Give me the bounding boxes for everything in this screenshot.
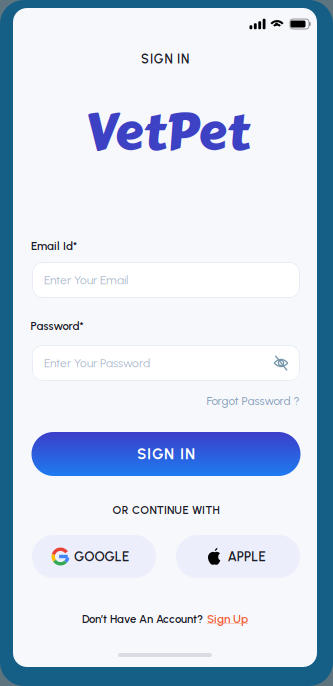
staticText: OR CONTINUE WITH [112,503,219,517]
staticText: Email Id* [31,239,77,253]
staticText: VetPet [85,92,249,172]
staticText: SIGN IN [141,51,189,67]
button[interactable]: APPLE [176,535,300,578]
staticText: Enter Your Password [44,356,150,370]
staticText: SIGN IN [137,445,195,463]
staticText: APPLE [228,548,265,564]
staticText: Don’t Have An Account? [82,612,203,626]
staticText: Enter Your Email [44,273,128,287]
button[interactable]: Show password [272,354,290,372]
staticText: Sign Up [207,612,248,626]
staticText: GOOGLE [74,548,129,564]
staticText: Forgot Password ? [206,394,299,408]
button[interactable]: Forgot Password ? [206,394,299,408]
button[interactable]: SIGN IN [31,432,300,476]
staticText: Password* [30,319,83,333]
button[interactable]: Sign Up [207,612,248,626]
button[interactable]: Continue with Google [32,535,156,578]
